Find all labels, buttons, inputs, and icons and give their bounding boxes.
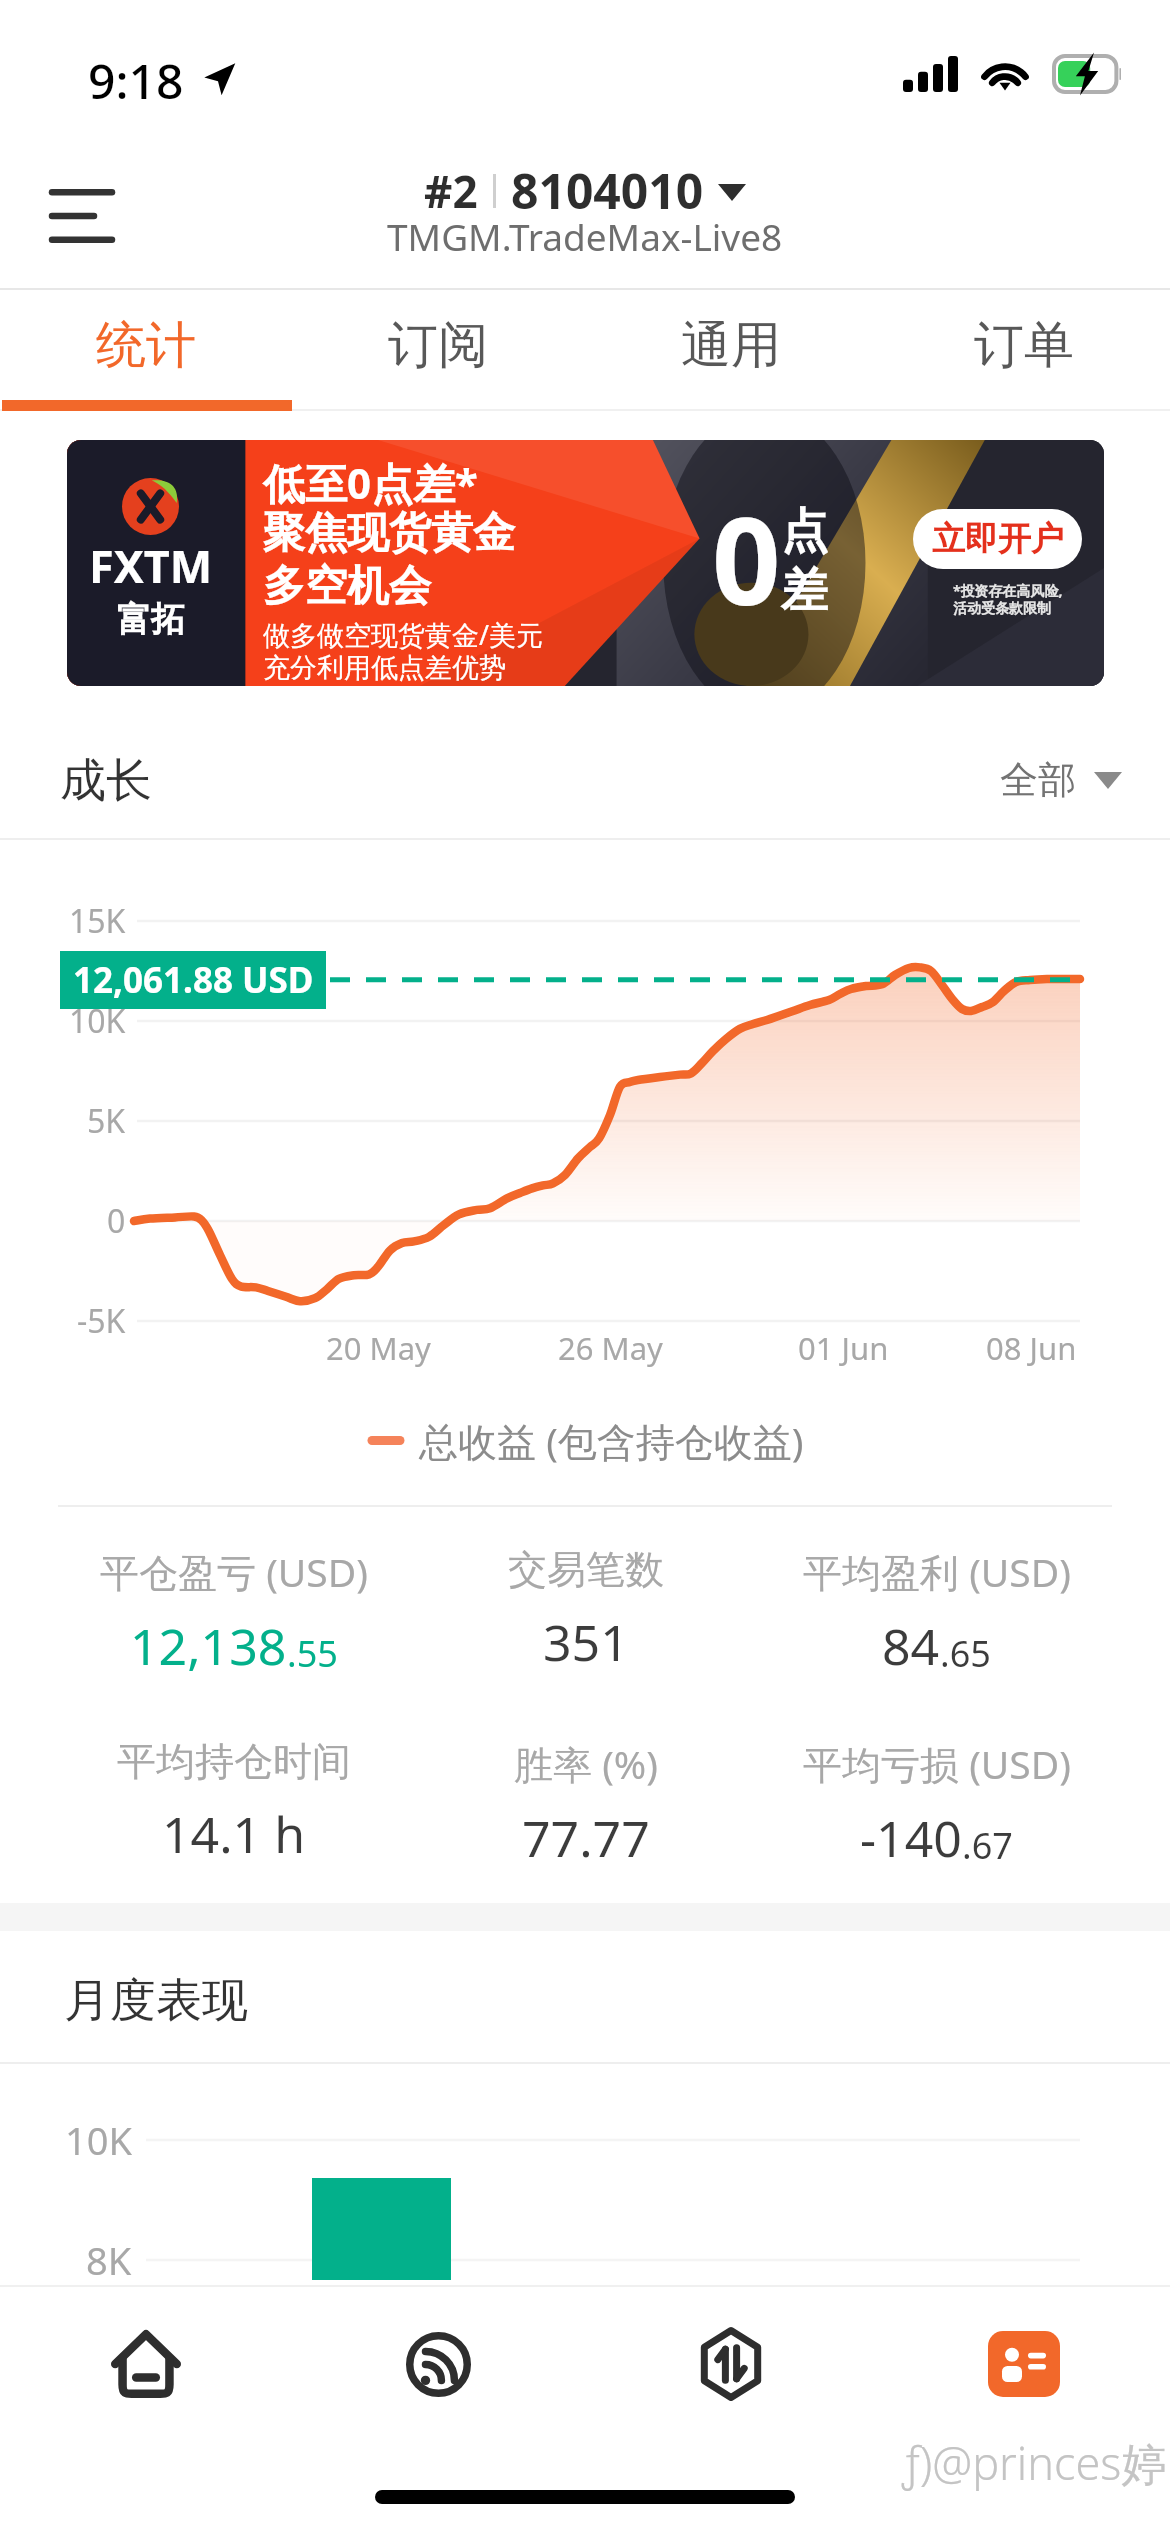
button[interactable]: Profile xyxy=(877,2292,1170,2436)
staticText: 08 Jun xyxy=(986,1327,1077,1369)
staticText: 聚焦现货黄金 xyxy=(263,507,515,560)
staticText: 5K xyxy=(87,1099,126,1143)
staticText: 统计 xyxy=(96,314,196,377)
staticText: 订单 xyxy=(974,314,1074,377)
staticText: 全部 xyxy=(1000,756,1076,804)
staticText: 平均持仓时间 xyxy=(117,1737,351,1786)
button[interactable]: Trade xyxy=(584,2292,877,2436)
staticText: 活动受条款限制 xyxy=(953,600,1051,618)
staticText: 8K xyxy=(86,2234,132,2286)
staticText: 订阅 xyxy=(388,314,488,377)
button[interactable]: 全部 xyxy=(1000,756,1122,804)
staticText: -140 xyxy=(860,1804,962,1872)
staticText: 01 Jun xyxy=(798,1327,889,1369)
staticText: 12,138 xyxy=(130,1612,287,1680)
staticText: 9:18 xyxy=(88,48,184,113)
button[interactable]: 订单 xyxy=(877,290,1170,400)
staticText: 8104010 xyxy=(511,158,704,223)
staticText: 充分利用低点差优势 xyxy=(263,651,506,685)
staticText: 351 xyxy=(543,1608,629,1676)
staticText: 20 May xyxy=(326,1327,431,1369)
staticText: 15K xyxy=(69,899,126,943)
staticText: 成长 xyxy=(60,752,152,810)
staticText: 平仓盈亏 (USD) xyxy=(100,1545,368,1598)
staticText: 12,061.88 USD xyxy=(73,956,314,1004)
staticText: .55 xyxy=(287,1629,338,1678)
staticText: 0 xyxy=(107,1199,126,1243)
staticText: #2 xyxy=(424,161,478,221)
staticText: .67 xyxy=(962,1821,1013,1870)
staticText: 77.77 xyxy=(522,1804,650,1872)
button[interactable]: #2 xyxy=(424,158,746,223)
staticText: .65 xyxy=(940,1629,991,1678)
staticText: 0 xyxy=(712,477,781,640)
button[interactable]: 通用 xyxy=(584,290,877,400)
staticText: -5K xyxy=(77,1299,126,1343)
staticText: 多空机会 xyxy=(263,560,431,613)
staticText: 通用 xyxy=(681,314,781,377)
staticText: 低至0点差* xyxy=(263,454,478,511)
staticText: FXTM xyxy=(89,535,213,596)
staticText: 10K xyxy=(69,999,126,1043)
staticText: 立即开户 xyxy=(932,518,1064,560)
button[interactable]: 立即开户 xyxy=(913,509,1082,569)
staticText: 月度表现 xyxy=(64,1972,248,2030)
staticText: 总收益 (包含持仓收益) xyxy=(419,1414,804,1467)
staticText: 26 May xyxy=(558,1327,663,1369)
button[interactable]: Home xyxy=(0,2292,292,2436)
staticText: 14.1 h xyxy=(162,1800,306,1868)
staticText: *投资存在高风险, xyxy=(953,581,1063,600)
button[interactable]: Signals xyxy=(292,2292,584,2436)
button[interactable]: Menu xyxy=(26,161,138,271)
staticText: 84 xyxy=(882,1612,940,1680)
staticText: 交易笔数 xyxy=(508,1545,664,1594)
staticText: ƒ)@princes婷 xyxy=(902,2432,1167,2493)
button[interactable]: Advertisement xyxy=(67,440,1104,686)
staticText: 胜率 (%) xyxy=(514,1737,658,1790)
staticText: 平均亏损 (USD) xyxy=(803,1737,1071,1790)
staticText: 平均盈利 (USD) xyxy=(803,1545,1071,1598)
staticText: 做多做空现货黄金/美元 xyxy=(263,616,544,653)
staticText: 富拓 xyxy=(117,598,185,641)
staticText: 10K xyxy=(65,2114,132,2166)
staticText: 点 xyxy=(781,502,828,561)
staticText: TMGM.TradeMax-Live8 xyxy=(387,211,783,261)
button[interactable]: 统计 xyxy=(0,290,292,400)
button[interactable]: 订阅 xyxy=(292,290,584,400)
staticText: 差 xyxy=(781,561,828,620)
